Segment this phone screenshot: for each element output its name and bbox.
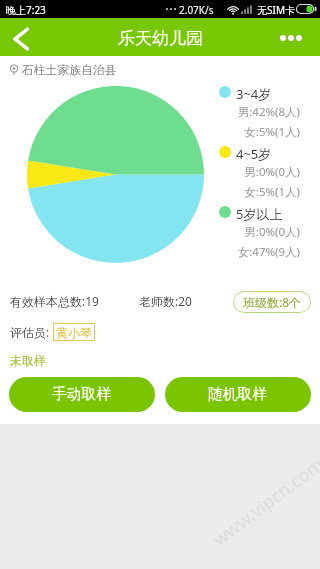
staticText: 5岁以上 (236, 205, 283, 223)
staticText: 手动取样 (52, 385, 112, 404)
staticText: 未取样 (10, 353, 46, 368)
staticText: 4~5岁 (236, 145, 272, 163)
staticText: 评估员: (10, 324, 50, 340)
button[interactable]: 手动取样 (9, 377, 155, 412)
staticText: 随机取样 (208, 385, 268, 404)
staticText: 乐天幼儿园 (118, 28, 203, 49)
staticText: 2.07K/s (179, 3, 214, 17)
staticText: 男:0%(0人) (244, 224, 300, 240)
staticText: 无SIM卡 (257, 3, 295, 17)
staticText: 女:5%(1人) (244, 184, 300, 200)
staticText: 石柱土家族自治县 (22, 63, 117, 78)
staticText: 有效样本总数:19 (10, 293, 99, 309)
staticText: 班级数:8个 (243, 294, 302, 310)
button[interactable]: Back (0, 18, 42, 56)
staticText: 3~4岁 (236, 85, 272, 103)
staticText: 黄小琴 (56, 325, 92, 340)
staticText: 老师数:20 (139, 293, 192, 309)
staticText: 女:5%(1人) (244, 124, 300, 140)
button[interactable]: 班级数:8个 (233, 291, 311, 313)
staticText: 男:0%(0人) (244, 164, 300, 180)
button[interactable]: 随机取样 (165, 377, 311, 412)
staticText: 男:42%(8人) (237, 104, 300, 120)
button[interactable]: More options (280, 18, 320, 56)
staticText: 女:47%(9人) (237, 244, 300, 260)
staticText: 晚上7:23 (6, 3, 46, 17)
